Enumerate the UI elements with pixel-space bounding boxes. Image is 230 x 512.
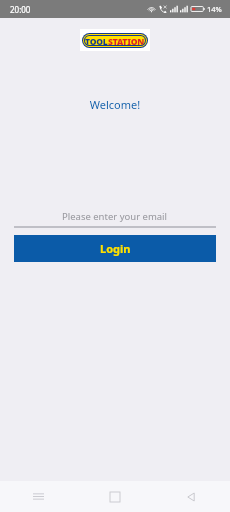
- staticText: 14%: [207, 4, 222, 14]
- staticText: Welcome!: [0, 97, 230, 112]
- staticText: TOOL: [85, 36, 108, 45]
- button[interactable]: Back: [153, 481, 230, 512]
- staticText: STATION: [108, 36, 145, 45]
- button[interactable]: Login: [14, 235, 216, 262]
- button[interactable]: Home: [76, 481, 153, 512]
- button[interactable]: Please enter your email: [14, 208, 216, 228]
- staticText: Please enter your email: [62, 210, 168, 223]
- button[interactable]: Recent apps: [0, 481, 76, 512]
- staticText: Login: [100, 241, 131, 256]
- staticText: 20:00: [10, 4, 31, 15]
